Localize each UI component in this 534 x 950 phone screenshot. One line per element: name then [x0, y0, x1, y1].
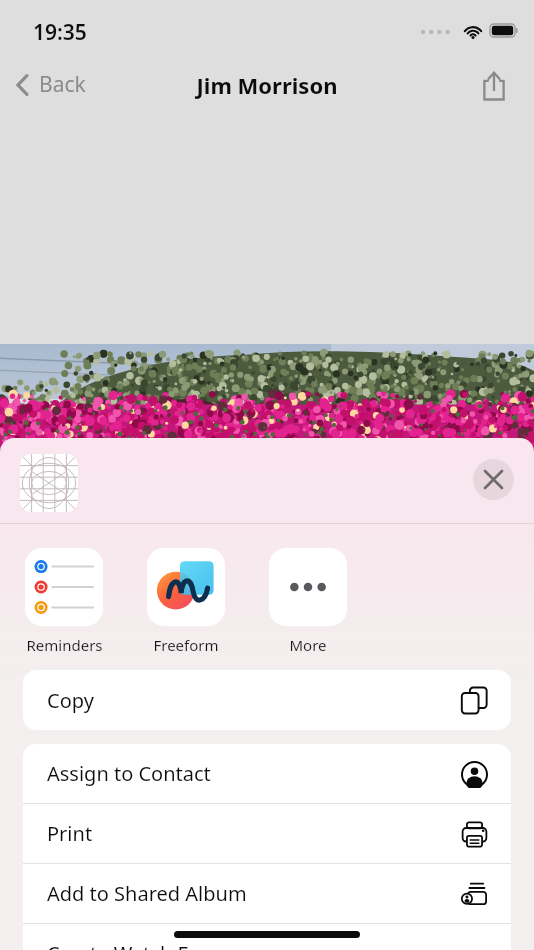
staticText: Add to Shared Album: [47, 880, 247, 907]
button[interactable]: Close: [473, 459, 514, 500]
button[interactable]: Print: [23, 804, 511, 863]
staticText: 19:35: [33, 18, 87, 47]
staticText: Create Watch Face: [47, 940, 220, 950]
staticText: Reminders: [26, 635, 103, 655]
button[interactable]: Photo preview: [20, 454, 78, 512]
button[interactable]: More: [266, 548, 350, 655]
staticText: Freeform: [153, 635, 219, 655]
button[interactable]: Share: [470, 62, 518, 110]
button[interactable]: Reminders: [22, 548, 106, 655]
staticText: Assign to Contact: [47, 760, 211, 787]
button[interactable]: Create Watch Face: [23, 924, 511, 950]
staticText: Back: [39, 70, 86, 99]
staticText: Print: [47, 820, 93, 847]
staticText: Copy: [47, 687, 94, 714]
button[interactable]: Add to Shared Album: [23, 864, 511, 923]
button[interactable]: Assign to Contact: [23, 744, 511, 803]
button[interactable]: Back: [8, 66, 92, 103]
staticText: More: [289, 635, 327, 655]
button[interactable]: Copy: [23, 670, 511, 730]
staticText: Jim Morrison: [0, 70, 534, 100]
button[interactable]: Freeform: [144, 548, 228, 655]
